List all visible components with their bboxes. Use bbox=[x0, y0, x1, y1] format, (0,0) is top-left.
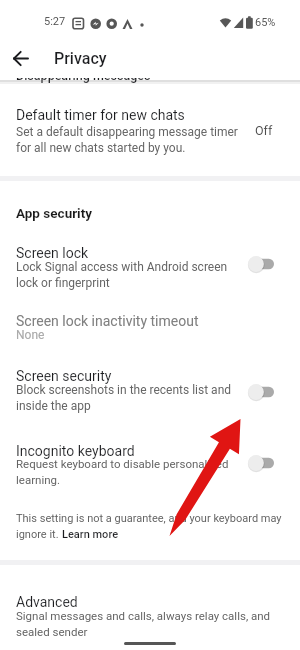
staticText: Set a default disappearing message timer… bbox=[16, 125, 238, 155]
button[interactable]: Advanced bbox=[0, 585, 300, 645]
staticText: Signal messages and calls, always relay … bbox=[16, 609, 271, 638]
button[interactable] bbox=[244, 382, 276, 402]
staticText: Screen security bbox=[16, 368, 112, 384]
staticText: Privacy bbox=[54, 49, 107, 68]
staticText: This setting is not a guarantee, and you… bbox=[16, 512, 282, 525]
staticText: None bbox=[16, 328, 45, 342]
staticText: Lock Signal access with Android screen l… bbox=[16, 260, 228, 290]
staticText: Incognito keyboard bbox=[16, 443, 135, 459]
staticText: ignore it. bbox=[16, 528, 62, 541]
button[interactable] bbox=[244, 254, 276, 274]
button[interactable]: Screen security bbox=[0, 360, 300, 416]
button[interactable] bbox=[244, 453, 276, 473]
button[interactable]: Screen lock bbox=[0, 236, 300, 292]
staticText: Screen lock inactivity timeout bbox=[16, 313, 199, 329]
staticText: App security bbox=[16, 205, 93, 221]
staticText: Disappearing messages bbox=[16, 68, 151, 83]
staticText: Screen lock bbox=[16, 245, 89, 261]
staticText: Off bbox=[255, 123, 273, 138]
staticText: 65% bbox=[255, 16, 276, 29]
button[interactable] bbox=[5, 42, 37, 74]
staticText: 5:27 bbox=[44, 15, 66, 28]
button[interactable]: Screen lock inactivity timeout bbox=[0, 306, 300, 348]
staticText: Advanced bbox=[16, 594, 78, 610]
staticText: Request keyboard to disable personalized… bbox=[16, 457, 229, 486]
button[interactable]: Default timer for new chats bbox=[0, 90, 300, 152]
staticText: Default timer for new chats bbox=[16, 107, 185, 123]
button[interactable]: Incognito keyboard bbox=[0, 435, 300, 487]
staticText: Block screenshots in the recents list an… bbox=[16, 383, 232, 413]
button[interactable]: Learn more bbox=[62, 528, 119, 541]
